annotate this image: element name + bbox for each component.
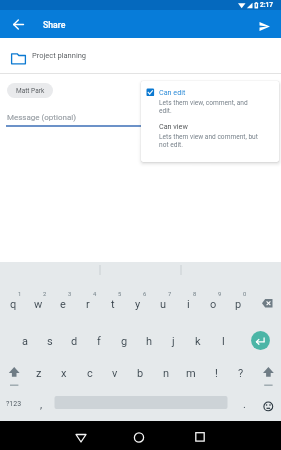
staticText: i [187, 298, 190, 311]
staticText: s [47, 335, 53, 348]
staticText: l [222, 335, 225, 348]
staticText: Message (optional) [7, 113, 76, 122]
staticText: n [163, 367, 170, 380]
button[interactable] [129, 427, 149, 447]
staticText: Lets them view and comment, but not edit… [159, 133, 258, 149]
staticText: 3 [68, 291, 72, 298]
staticText: o [210, 298, 217, 311]
staticText: q [10, 298, 17, 311]
staticText: 2 [43, 291, 47, 298]
staticText: Share [43, 20, 66, 30]
staticText: g [121, 335, 128, 348]
staticText: w [34, 298, 43, 311]
staticText: Can view [159, 122, 188, 130]
staticText: Matt Park [16, 87, 45, 95]
staticText: 2:17 [260, 1, 274, 9]
button[interactable] [0, 277, 281, 421]
staticText: y [135, 298, 141, 311]
staticText: c [87, 367, 93, 380]
staticText: 8 [193, 291, 197, 298]
staticText: z [36, 367, 42, 380]
staticText: 9 [218, 291, 222, 298]
staticText: b [137, 367, 144, 380]
button[interactable] [141, 81, 279, 119]
staticText: . [243, 398, 246, 411]
staticText: ! [215, 367, 218, 380]
staticText: h [146, 335, 153, 348]
button[interactable]: Project planning [0, 38, 281, 73]
staticText: u [160, 298, 167, 311]
staticText: e [60, 298, 66, 311]
button[interactable]: Matt Park [7, 83, 53, 98]
staticText: x [61, 367, 67, 380]
staticText: 4 [93, 291, 97, 298]
staticText: t [111, 298, 115, 311]
staticText: m [186, 367, 196, 380]
button[interactable] [190, 427, 210, 447]
staticText: d [71, 335, 78, 348]
staticText: ?123 [6, 400, 22, 408]
staticText: 5 [118, 291, 122, 298]
staticText: Can edit [159, 88, 186, 96]
staticText: k [195, 335, 201, 348]
button[interactable] [141, 119, 279, 162]
staticText: , [40, 398, 43, 411]
staticText: Project planning [32, 51, 87, 60]
staticText: f [97, 335, 101, 348]
staticText: 6 [143, 291, 147, 298]
staticText: v [112, 367, 118, 380]
staticText: 0 [243, 291, 247, 298]
staticText: 1 [18, 291, 22, 298]
button[interactable] [71, 427, 91, 447]
staticText: ? [238, 367, 244, 380]
staticText: 7 [168, 291, 172, 298]
button[interactable] [8, 14, 29, 35]
staticText: Lets them view, comment, and edit. [159, 99, 248, 115]
staticText: p [235, 298, 242, 311]
staticText: j [172, 335, 175, 348]
staticText: r [86, 298, 90, 311]
staticText: a [22, 335, 28, 348]
button[interactable] [254, 16, 275, 37]
